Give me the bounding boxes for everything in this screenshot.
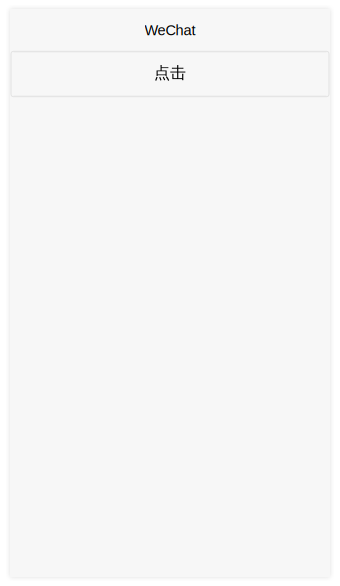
staticText: WeChat — [144, 22, 195, 38]
button[interactable]: 点击 — [11, 51, 329, 97]
staticText: 点击 — [154, 63, 186, 83]
